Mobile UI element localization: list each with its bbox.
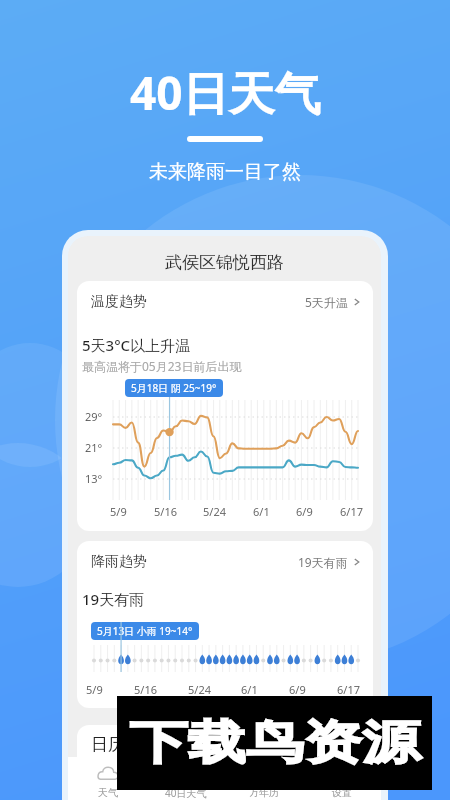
staticText: 6/17 (340, 504, 363, 519)
staticText: 6/9 (289, 682, 306, 697)
staticText: 5天3°C以上升温 (82, 335, 191, 355)
staticText: 21° (85, 440, 103, 455)
staticText: 5/16 (134, 682, 157, 697)
staticText: 天气 (98, 786, 118, 799)
button[interactable]: 温度趋势 (77, 281, 373, 323)
staticText: 19天有雨 (82, 589, 145, 609)
staticText: 未来降雨一目了然 (149, 160, 301, 184)
button[interactable]: 天气 (68, 758, 147, 799)
button[interactable]: 5月18日 阴 25~19° (131, 381, 217, 395)
staticText: 万年历 (249, 786, 279, 799)
staticText: 最高温将于05月23日前后出现 (82, 358, 242, 374)
button[interactable]: 降雨趋势 (77, 541, 373, 583)
staticText: 6/1 (241, 682, 258, 697)
staticText: 40日天气 (165, 786, 207, 800)
staticText: 5天升温 (305, 294, 348, 310)
staticText: 5/9 (110, 504, 127, 519)
button[interactable]: 日历 (77, 725, 373, 765)
staticText: 温度趋势 (91, 293, 147, 311)
staticText: 武侯区锦悦西路 (165, 252, 284, 273)
button[interactable]: 万年历 (225, 758, 303, 799)
staticText: 19天有雨 (298, 554, 348, 570)
staticText: 下载鸟资源 (129, 714, 421, 772)
button[interactable]: 5月13日 小雨 19~14° (97, 624, 193, 638)
staticText: 6/9 (296, 504, 313, 519)
staticText: 5/24 (203, 504, 226, 519)
staticText: 降雨趋势 (91, 553, 147, 571)
staticText: 6/1 (253, 504, 270, 519)
button[interactable]: 武侯区锦悦西路 (68, 246, 381, 278)
staticText: 设置 (332, 786, 352, 799)
staticText: 5/9 (86, 682, 103, 697)
button[interactable]: 设置 (303, 758, 381, 799)
staticText: 5/16 (154, 504, 177, 519)
staticText: 13° (85, 471, 103, 486)
staticText: 5月13日 小雨 19~14° (97, 624, 193, 638)
staticText: 5月18日 阴 25~19° (131, 381, 217, 395)
button[interactable]: 40日天气 (147, 758, 225, 800)
staticText: 40日天气 (130, 61, 321, 124)
staticText: 6/17 (337, 682, 360, 697)
staticText: 29° (85, 409, 103, 424)
staticText: 5/24 (188, 682, 211, 697)
staticText: 日历 (91, 734, 125, 755)
